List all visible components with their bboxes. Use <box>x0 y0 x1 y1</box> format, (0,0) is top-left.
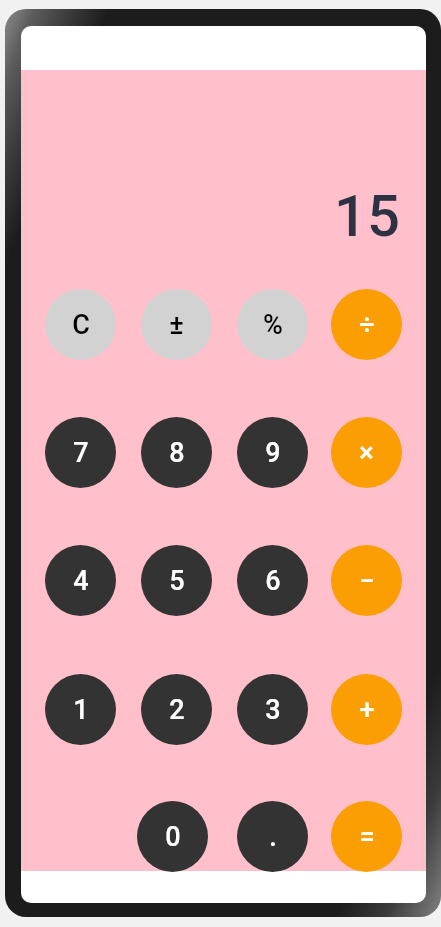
staticText: 0 <box>165 821 181 853</box>
button[interactable]: 3 <box>237 674 308 745</box>
staticText: 6 <box>265 565 281 597</box>
staticText: 8 <box>169 437 185 469</box>
button[interactable]: + <box>331 674 402 745</box>
button[interactable]: 8 <box>141 417 212 488</box>
button[interactable]: × <box>331 417 402 488</box>
staticText: ÷ <box>359 309 375 341</box>
staticText: C <box>72 309 90 341</box>
staticText: 4 <box>73 565 89 597</box>
button[interactable]: 1 <box>45 674 116 745</box>
staticText: % <box>263 309 283 341</box>
staticText: + <box>359 694 375 726</box>
button[interactable]: . <box>237 801 308 872</box>
button[interactable]: 5 <box>141 545 212 616</box>
staticText: . <box>269 821 277 853</box>
button[interactable]: 7 <box>45 417 116 488</box>
staticText: 5 <box>169 565 185 597</box>
button[interactable]: C <box>45 289 116 360</box>
staticText: ± <box>169 309 184 341</box>
staticText: 9 <box>265 437 281 469</box>
button[interactable]: ± <box>141 289 212 360</box>
button[interactable]: 4 <box>45 545 116 616</box>
button[interactable]: 9 <box>237 417 308 488</box>
staticText: 15 <box>334 182 400 250</box>
button[interactable]: 6 <box>237 545 308 616</box>
staticText: − <box>359 565 375 597</box>
staticText: = <box>359 821 375 853</box>
button[interactable]: 2 <box>141 674 212 745</box>
staticText: × <box>359 437 374 469</box>
button[interactable]: ÷ <box>331 289 402 360</box>
button[interactable]: % <box>237 289 308 360</box>
button[interactable]: − <box>331 545 402 616</box>
staticText: 2 <box>169 694 185 726</box>
button[interactable]: = <box>331 801 402 872</box>
staticText: 1 <box>73 694 89 726</box>
staticText: 7 <box>73 437 89 469</box>
staticText: 3 <box>265 694 281 726</box>
button[interactable]: 0 <box>137 801 208 872</box>
